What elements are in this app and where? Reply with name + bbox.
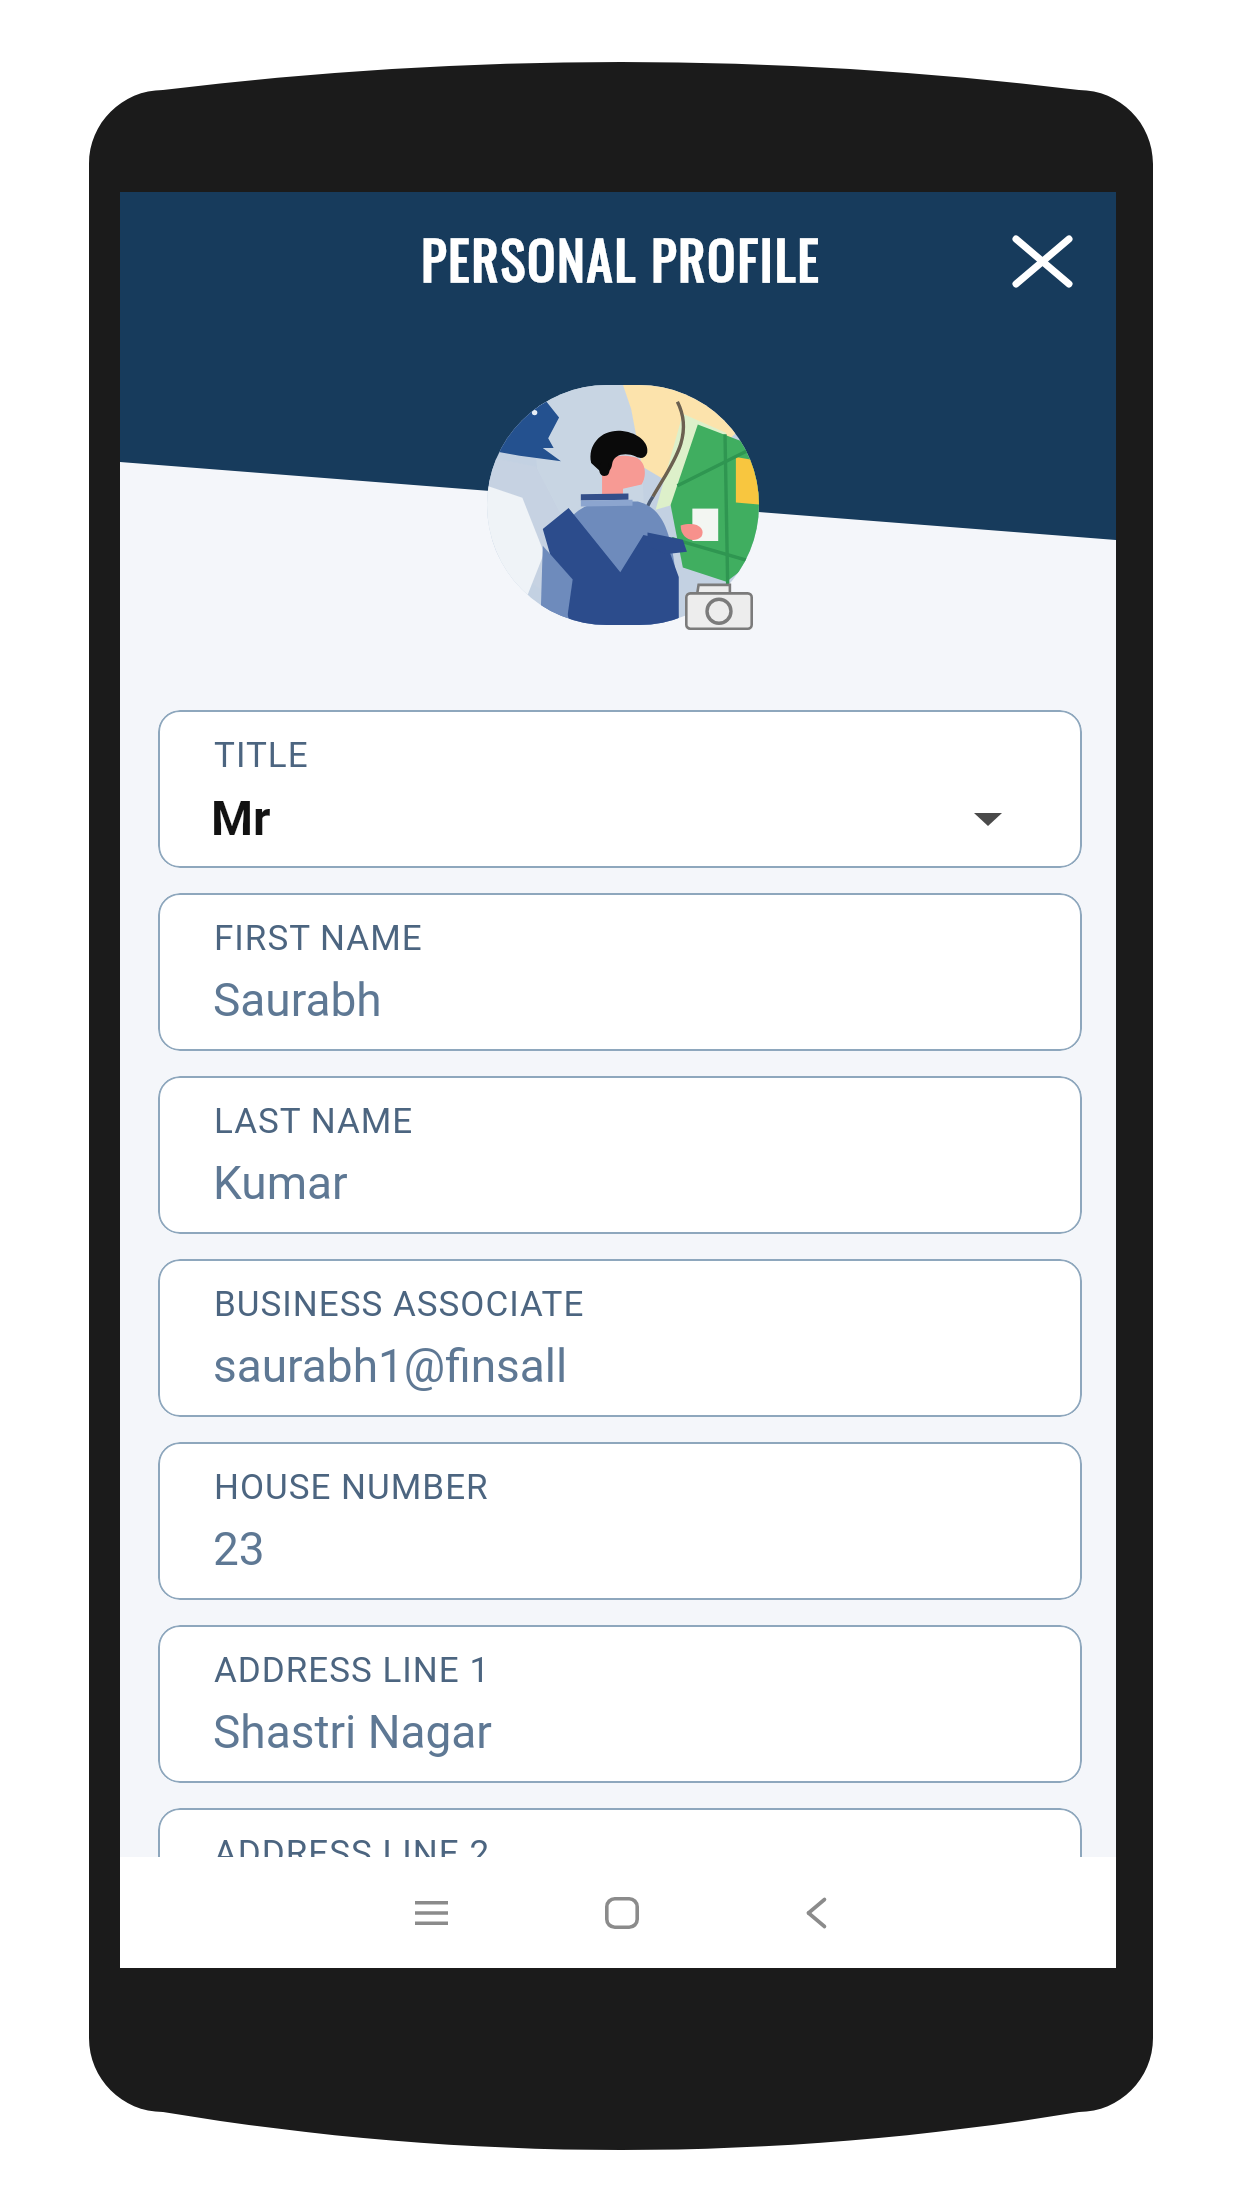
button[interactable]: Home xyxy=(562,1857,682,1968)
staticText: LAST NAME xyxy=(214,1101,414,1142)
button[interactable]: Close xyxy=(994,213,1090,309)
button[interactable]: HOUSE NUMBER xyxy=(158,1442,1082,1600)
staticText: saurabh1@finsall xyxy=(213,1339,568,1393)
button[interactable]: Change profile photo xyxy=(685,583,753,630)
staticText: HOUSE NUMBER xyxy=(214,1467,489,1508)
staticText: 23 xyxy=(213,1522,265,1576)
staticText: Shastri Nagar xyxy=(213,1705,492,1759)
staticText: TITLE xyxy=(214,735,309,776)
button[interactable]: ADDRESS LINE 2 xyxy=(158,1808,1082,1966)
staticText: ADDRESS LINE 1 xyxy=(214,1650,491,1691)
staticText: Saurabh xyxy=(213,973,382,1027)
button[interactable]: FIRST NAME xyxy=(158,893,1082,1051)
staticText: Mr xyxy=(211,790,271,846)
staticText: BUSINESS ASSOCIATE xyxy=(214,1284,585,1325)
staticText: ADDRESS LINE 2 xyxy=(214,1833,491,1874)
button[interactable]: Back xyxy=(756,1857,876,1968)
staticText: FIRST NAME xyxy=(214,918,423,959)
button[interactable]: TITLE xyxy=(158,710,1082,868)
button[interactable]: BUSINESS ASSOCIATE xyxy=(158,1259,1082,1417)
button[interactable]: ADDRESS LINE 1 xyxy=(158,1625,1082,1783)
staticText: Kumar xyxy=(213,1156,348,1210)
staticText: PERSONAL PROFILE xyxy=(123,220,1119,297)
button[interactable]: Recent apps xyxy=(371,1857,491,1968)
button[interactable]: LAST NAME xyxy=(158,1076,1082,1234)
